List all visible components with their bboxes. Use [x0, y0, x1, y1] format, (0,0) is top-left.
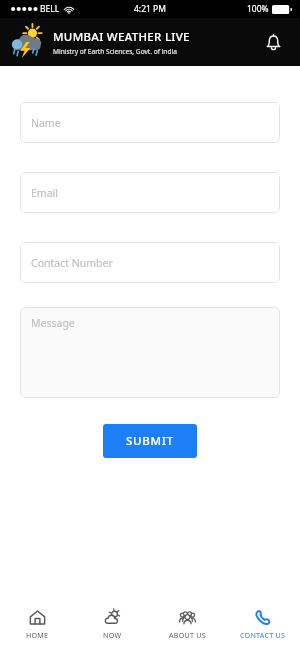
button[interactable]: Message	[20, 307, 280, 398]
button[interactable]: Contact Number	[20, 242, 280, 283]
button[interactable]: NOW	[75, 599, 150, 649]
staticText: Contact Number	[31, 256, 113, 270]
staticText: BELL	[40, 3, 60, 15]
staticText: Ministry of Earth Sciences, Govt. of ind…	[53, 47, 177, 56]
button[interactable]: Name	[20, 102, 280, 143]
staticText: SUBMIT	[126, 433, 174, 449]
staticText: Name	[31, 116, 61, 130]
staticText: MUMBAI WEATHER LIVE	[53, 29, 190, 45]
staticText: 100%	[247, 3, 269, 15]
button[interactable]: Notifications	[256, 25, 290, 59]
staticText: 4:21 PM	[134, 3, 166, 15]
button[interactable]: ABOUT US	[150, 599, 225, 649]
staticText: CONTACT US	[240, 630, 286, 640]
staticText: HOME	[26, 630, 49, 640]
button[interactable]: CONTACT US	[225, 599, 300, 649]
button[interactable]: SUBMIT	[103, 424, 197, 458]
staticText: ABOUT US	[169, 630, 206, 640]
staticText: Message	[31, 316, 75, 330]
staticText: NOW	[103, 630, 122, 640]
button[interactable]: Email	[20, 172, 280, 213]
button[interactable]: HOME	[0, 599, 75, 649]
staticText: Email	[31, 186, 58, 200]
